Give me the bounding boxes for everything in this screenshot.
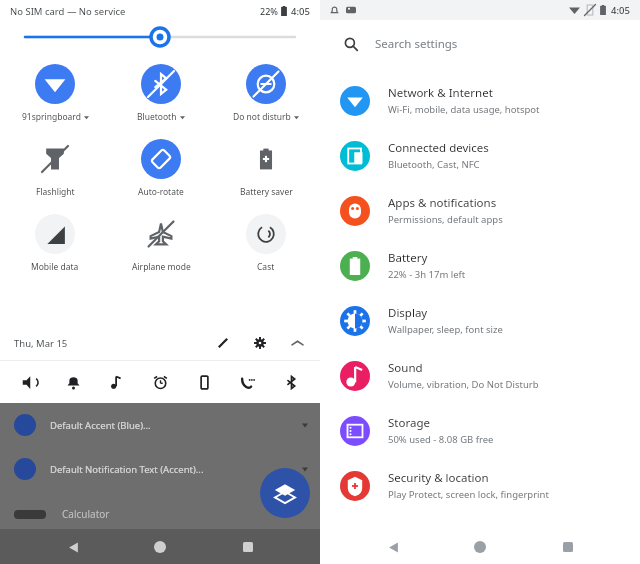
button[interactable]: Auto-rotate xyxy=(108,139,214,198)
staticText: 4:05 xyxy=(291,5,310,18)
button[interactable]: Bluetooth xyxy=(108,64,214,123)
staticText: Battery saver xyxy=(240,186,293,198)
button[interactable]: 91springboard xyxy=(2,64,108,123)
button[interactable]: Cast xyxy=(214,214,318,273)
staticText: Play Protect, screen lock, fingerprint xyxy=(388,488,549,501)
staticText: Bluetooth, Cast, NFC xyxy=(388,158,480,171)
button[interactable]: Default Accent (Blue)... xyxy=(14,403,308,447)
button[interactable]: Connected devices xyxy=(320,128,640,183)
staticText: Thu, Mar 15 xyxy=(14,337,68,350)
button[interactable]: Default Notification Text (Accent)... xyxy=(14,447,308,491)
button[interactable]: Layers xyxy=(260,468,310,518)
staticText: 22% xyxy=(260,5,278,17)
staticText: Volume, vibration, Do Not Disturb xyxy=(388,378,539,391)
staticText: Default Notification Text (Accent)... xyxy=(50,463,204,476)
staticText: Sound xyxy=(388,360,423,376)
button[interactable]: Battery xyxy=(320,238,640,293)
button[interactable]: Music volume xyxy=(101,367,131,397)
button[interactable]: Collapse xyxy=(284,330,310,356)
staticText: Default Accent (Blue)... xyxy=(50,419,151,432)
staticText: Airplane mode xyxy=(132,261,191,273)
button[interactable]: Search settings xyxy=(328,26,632,61)
button[interactable]: Settings xyxy=(247,330,273,356)
button[interactable]: Home xyxy=(145,532,175,562)
button[interactable]: Bluetooth volume xyxy=(276,367,306,397)
staticText: Auto-rotate xyxy=(138,186,184,198)
button[interactable]: Alarm volume xyxy=(145,367,175,397)
staticText: Apps & notifications xyxy=(388,195,497,211)
staticText: Network & Internet xyxy=(388,85,493,101)
staticText: No SIM card — No service xyxy=(10,5,126,18)
staticText: 4:05 xyxy=(611,4,630,17)
button[interactable]: Media volume xyxy=(14,367,44,397)
button[interactable]: Recents xyxy=(553,532,583,562)
button[interactable]: Phone xyxy=(189,367,219,397)
button[interactable]: Ring volume xyxy=(58,367,88,397)
staticText: Calculator xyxy=(62,507,110,521)
staticText: Do not disturb xyxy=(233,111,291,123)
staticText: 91springboard xyxy=(22,111,81,123)
staticText: Cast xyxy=(257,261,275,273)
button[interactable]: Recents xyxy=(233,532,263,562)
button[interactable]: Sound xyxy=(320,348,640,403)
button[interactable]: Mobile data xyxy=(2,214,108,273)
staticText: Wallpaper, sleep, font size xyxy=(388,323,503,336)
staticText: Connected devices xyxy=(388,140,489,156)
button[interactable]: Storage xyxy=(320,403,640,458)
staticText: Storage xyxy=(388,415,430,431)
staticText: 50% used - 8.08 GB free xyxy=(388,433,494,446)
button[interactable]: Back xyxy=(58,532,88,562)
staticText: Bluetooth xyxy=(137,111,177,123)
button[interactable]: Edit xyxy=(210,330,236,356)
button[interactable]: Display xyxy=(320,293,640,348)
button[interactable]: Back xyxy=(378,532,408,562)
staticText: Wi-Fi, mobile, data usage, hotspot xyxy=(388,103,540,116)
staticText: Security & location xyxy=(388,470,489,486)
button[interactable]: Security & location xyxy=(320,458,640,513)
button[interactable]: Apps & notifications xyxy=(320,183,640,238)
staticText: Flashlight xyxy=(36,186,75,198)
button[interactable]: Home xyxy=(465,532,495,562)
staticText: Permissions, default apps xyxy=(388,213,503,226)
button[interactable]: Call volume xyxy=(233,367,263,397)
staticText: Search settings xyxy=(375,36,458,52)
staticText: Display xyxy=(388,305,428,321)
button[interactable]: Flashlight xyxy=(2,139,108,198)
button[interactable]: Do not disturb xyxy=(214,64,318,123)
button[interactable]: Airplane mode xyxy=(108,214,214,273)
button[interactable]: Network & Internet xyxy=(320,73,640,128)
staticText: Battery xyxy=(388,250,428,266)
staticText: 22% - 3h 17m left xyxy=(388,268,466,281)
staticText: Mobile data xyxy=(31,261,79,273)
button[interactable]: Battery saver xyxy=(214,139,318,198)
